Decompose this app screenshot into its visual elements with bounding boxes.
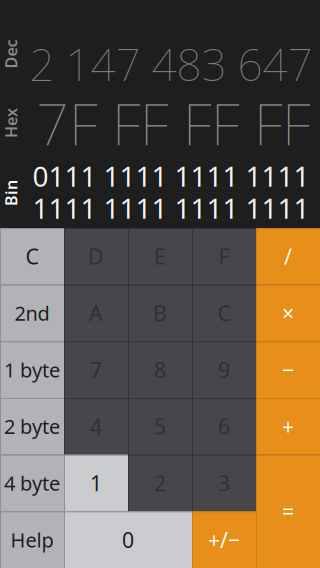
staticText: A: [89, 299, 103, 327]
staticText: 5: [154, 412, 166, 440]
staticText: Hex: [0, 112, 26, 134]
staticText: 4: [90, 412, 102, 440]
button[interactable]: 2nd: [0, 285, 64, 341]
staticText: 8: [154, 355, 166, 384]
staticText: Bin: [0, 182, 24, 204]
button[interactable]: D: [64, 228, 128, 285]
staticText: 2nd: [14, 300, 49, 326]
button[interactable]: 0: [64, 511, 192, 568]
button[interactable]: −: [256, 341, 320, 398]
staticText: E: [154, 242, 166, 270]
staticText: F: [218, 242, 229, 270]
staticText: +: [282, 412, 294, 440]
button[interactable]: 7: [64, 341, 128, 398]
button[interactable]: 1: [64, 455, 128, 511]
button[interactable]: C: [192, 285, 256, 341]
staticText: C: [217, 299, 230, 327]
button[interactable]: ×: [256, 285, 320, 341]
button[interactable]: F: [192, 228, 256, 285]
button[interactable]: 5: [128, 398, 192, 455]
staticText: 7F FF FF FF: [36, 84, 310, 162]
button[interactable]: 2: [128, 455, 192, 511]
staticText: 7: [90, 355, 102, 384]
staticText: 4 byte: [4, 470, 60, 496]
button[interactable]: A: [64, 285, 128, 341]
staticText: /: [284, 242, 292, 270]
button[interactable]: +: [256, 398, 320, 455]
staticText: B: [153, 299, 167, 327]
staticText: 0111 1111 1111 1111: [32, 157, 309, 195]
button[interactable]: E: [128, 228, 192, 285]
staticText: D: [88, 242, 104, 270]
button[interactable]: 4 byte: [0, 455, 64, 511]
staticText: 3: [218, 469, 230, 497]
button[interactable]: 4: [64, 398, 128, 455]
staticText: 0: [122, 525, 134, 554]
button[interactable]: B: [128, 285, 192, 341]
staticText: +/−: [208, 525, 240, 554]
staticText: 2: [154, 469, 166, 497]
staticText: 6: [218, 412, 230, 440]
staticText: =: [282, 497, 294, 525]
staticText: 2 147 483 647: [29, 34, 312, 94]
staticText: 1111 1111 1111 1111: [32, 189, 309, 227]
staticText: ×: [282, 299, 294, 327]
button[interactable]: 1 byte: [0, 341, 64, 398]
staticText: 2 byte: [4, 413, 60, 440]
button[interactable]: +/−: [192, 511, 256, 568]
staticText: 1: [90, 469, 102, 497]
button[interactable]: =: [256, 455, 320, 568]
button[interactable]: 8: [128, 341, 192, 398]
button[interactable]: 9: [192, 341, 256, 398]
staticText: 1 byte: [4, 356, 60, 383]
staticText: −: [282, 355, 294, 384]
staticText: Help: [10, 526, 53, 553]
staticText: 9: [218, 355, 230, 384]
button[interactable]: 3: [192, 455, 256, 511]
button[interactable]: C: [0, 228, 64, 285]
button[interactable]: Help: [0, 511, 64, 568]
button[interactable]: 6: [192, 398, 256, 455]
staticText: C: [25, 242, 38, 270]
button[interactable]: 2 byte: [0, 398, 64, 455]
staticText: Dec: [0, 43, 25, 65]
button[interactable]: /: [256, 228, 320, 285]
